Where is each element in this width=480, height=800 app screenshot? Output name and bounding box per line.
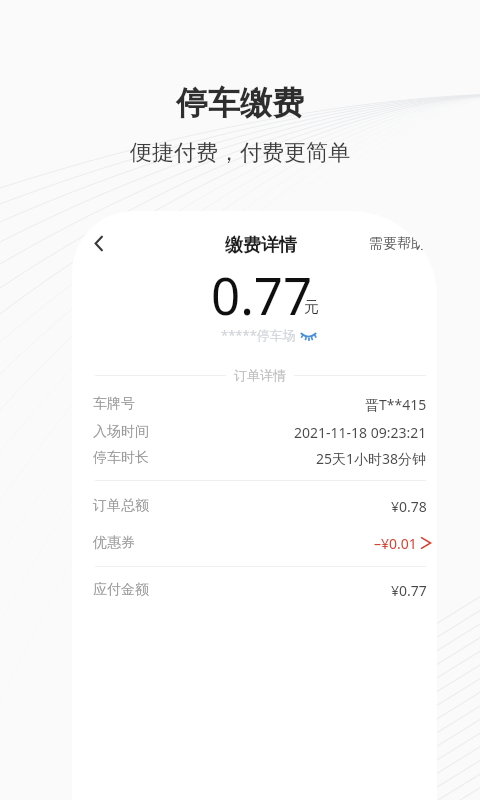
staticText: 元 — [304, 298, 319, 317]
button[interactable]: 入场时间 — [72, 418, 437, 446]
staticText: 25天1小时38分钟 — [316, 449, 427, 468]
staticText: 停车时长 — [93, 449, 149, 467]
staticText: *****停车场 — [221, 326, 296, 344]
staticText: 0.77 — [211, 260, 313, 329]
staticText: 优惠券 — [93, 534, 135, 552]
staticText: –¥0.01 — [374, 534, 417, 553]
staticText: 便捷付费，付费更简单 — [130, 139, 350, 167]
staticText: 车牌号 — [93, 395, 135, 413]
staticText: 2021-11-18 09:23:21 — [294, 423, 427, 442]
button[interactable]: 停车时长 — [72, 444, 437, 472]
button[interactable]: 订单总额 — [72, 492, 437, 520]
staticText: ¥0.78 — [391, 497, 427, 516]
staticText: ¥0.77 — [391, 581, 427, 600]
staticText: 应付金额 — [93, 581, 149, 599]
button[interactable]: 车牌号 — [72, 390, 437, 418]
staticText: 缴费详情 — [225, 234, 297, 257]
other: 隐藏车场名称 — [301, 329, 316, 344]
button[interactable]: 需要帮助 — [369, 235, 425, 253]
staticText: 晋T**415 — [365, 395, 427, 414]
staticText: 订单详情 — [234, 367, 286, 383]
button[interactable]: 返回 — [81, 226, 115, 260]
staticText: 入场时间 — [93, 423, 149, 441]
button[interactable]: 优惠券 — [72, 529, 437, 557]
staticText: 需要帮助 — [369, 235, 425, 253]
staticText: 订单总额 — [93, 497, 149, 515]
button[interactable]: 应付金额 — [72, 576, 437, 604]
staticText: 停车缴费 — [176, 83, 304, 123]
